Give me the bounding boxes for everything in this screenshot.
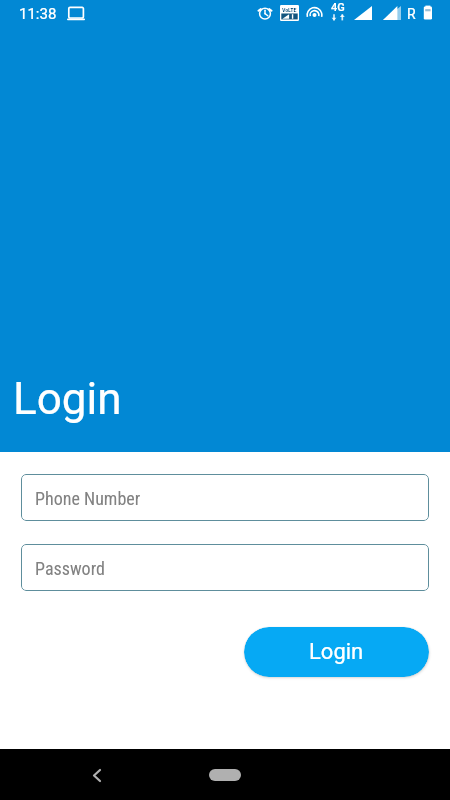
staticText: Login	[309, 639, 364, 665]
staticText: 4G	[331, 1, 345, 14]
staticText: Phone Number	[35, 488, 141, 509]
button[interactable]: Password	[21, 544, 429, 591]
staticText: Password	[35, 558, 105, 579]
button[interactable]: Home	[195, 760, 255, 790]
button[interactable]: Phone Number	[21, 474, 429, 521]
staticText: Login	[13, 373, 122, 425]
staticText: 11:38	[19, 5, 57, 23]
button[interactable]: Login	[244, 627, 429, 677]
staticText: R	[407, 6, 416, 22]
staticText: VoLTE	[282, 6, 297, 13]
button[interactable]: Back	[77, 755, 117, 795]
